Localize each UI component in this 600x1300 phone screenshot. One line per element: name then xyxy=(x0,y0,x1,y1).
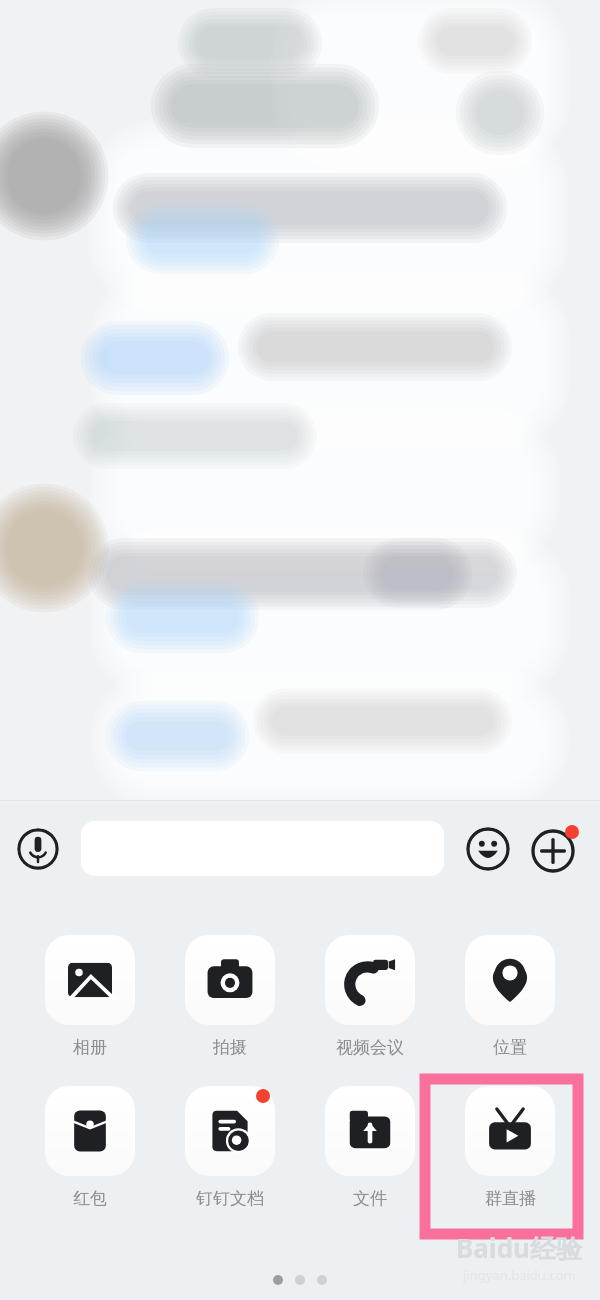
staticText: 文件 xyxy=(353,1188,387,1209)
staticText: 红包 xyxy=(73,1188,107,1209)
staticText: 拍摄 xyxy=(213,1037,247,1058)
button[interactable]: 视频会议 xyxy=(325,935,415,1058)
button[interactable]: Voice input xyxy=(17,828,59,870)
staticText: Baidu经验 xyxy=(456,1230,582,1266)
button[interactable]: 群直播 xyxy=(465,1086,555,1209)
button[interactable]: 文件 xyxy=(325,1086,415,1209)
staticText: 视频会议 xyxy=(336,1037,404,1058)
button[interactable]: Emoji xyxy=(466,827,510,871)
staticText: 钉钉文档 xyxy=(196,1188,264,1209)
staticText: 位置 xyxy=(493,1037,527,1058)
button[interactable]: 位置 xyxy=(465,935,555,1058)
button[interactable]: 相册 xyxy=(45,935,135,1058)
button[interactable]: More actions xyxy=(531,829,575,873)
button[interactable]: 拍摄 xyxy=(185,935,275,1058)
staticText: 群直播 xyxy=(485,1188,536,1209)
staticText: jingyan.baidu.com xyxy=(463,1266,576,1284)
button[interactable]: 红包 xyxy=(45,1086,135,1209)
button[interactable]: 钉钉文档 xyxy=(185,1086,275,1209)
staticText: 相册 xyxy=(73,1037,107,1058)
